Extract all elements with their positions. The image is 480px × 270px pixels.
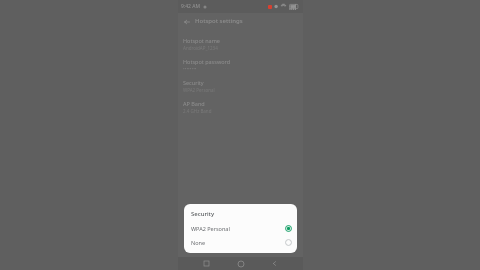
staticText: Hotspot password: [183, 58, 231, 65]
staticText: WPA2 Personal: [183, 87, 215, 93]
button[interactable]: Hotspot name: [178, 33, 303, 54]
staticText: ••••••••: [183, 66, 197, 72]
button[interactable]: Recents: [201, 258, 212, 269]
staticText: 2.4 GHz Band: [183, 108, 212, 114]
staticText: Hotspot settings: [195, 17, 243, 25]
button[interactable]: AP Band: [178, 96, 303, 117]
button[interactable]: None: [191, 237, 292, 248]
staticText: AndroidAP_1234: [183, 45, 218, 51]
staticText: AP Band: [183, 100, 205, 107]
button[interactable]: Security: [178, 75, 303, 96]
button[interactable]: Back: [178, 13, 303, 29]
staticText: 9:42 AM: [181, 3, 201, 10]
staticText: WPA2 Personal: [191, 225, 285, 232]
button[interactable]: Back: [182, 17, 191, 26]
button[interactable]: Home: [235, 258, 246, 269]
staticText: Hotspot name: [183, 37, 220, 44]
staticText: Security: [183, 79, 204, 86]
button[interactable]: WPA2 Personal: [191, 223, 292, 234]
button[interactable]: Back: [269, 258, 280, 269]
staticText: None: [191, 239, 285, 246]
staticText: Security: [191, 210, 215, 218]
button[interactable]: Hotspot password: [178, 54, 303, 75]
